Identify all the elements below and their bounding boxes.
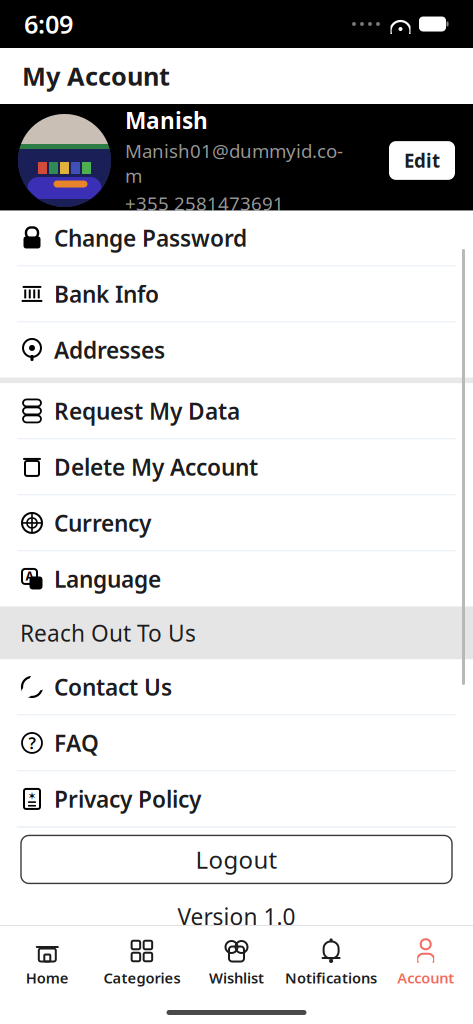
- staticText: Manish: [125, 105, 208, 135]
- staticText: ?: [28, 732, 35, 753]
- staticText: Currency: [54, 508, 151, 538]
- button[interactable]: Logout: [21, 835, 452, 883]
- staticText: Notifications: [285, 968, 377, 987]
- staticText: A: [25, 568, 33, 584]
- staticText: Categories: [103, 968, 180, 987]
- staticText: Logout: [195, 843, 277, 875]
- staticText: Delete My Account: [54, 452, 258, 482]
- staticText: Contact Us: [54, 672, 172, 702]
- button[interactable]: Edit: [389, 141, 455, 180]
- staticText: Bank Info: [54, 279, 159, 309]
- staticText: 6:09: [24, 7, 73, 41]
- button[interactable]: Contact Us: [0, 659, 473, 714]
- staticText: Change Password: [54, 223, 247, 253]
- staticText: Wishlist: [209, 968, 264, 987]
- button[interactable]: Request My Data: [0, 383, 473, 438]
- staticText: +355 2581473691: [125, 191, 284, 216]
- button[interactable]: Notifications: [284, 935, 378, 991]
- staticText: Version 1.0: [177, 901, 295, 931]
- button[interactable]: Account: [378, 935, 473, 991]
- button[interactable]: Change Password: [0, 210, 473, 265]
- button[interactable]: Bank Info: [0, 266, 473, 321]
- staticText: Manish01@dummyid.com: [125, 138, 343, 188]
- button[interactable]: Currency: [0, 495, 473, 550]
- button[interactable]: A: [0, 551, 473, 606]
- button[interactable]: Categories: [95, 935, 189, 991]
- staticText: Language: [54, 564, 161, 594]
- staticText: My Account: [22, 59, 170, 93]
- button[interactable]: Addresses: [0, 322, 473, 377]
- button[interactable]: Delete My Account: [0, 439, 473, 494]
- staticText: Request My Data: [54, 396, 240, 426]
- staticText: Home: [26, 968, 69, 987]
- button[interactable]: Home: [0, 935, 95, 991]
- staticText: Account: [397, 968, 454, 987]
- staticText: Edit: [404, 148, 440, 173]
- staticText: Addresses: [54, 335, 165, 365]
- button[interactable]: ?: [0, 715, 473, 770]
- staticText: Privacy Policy: [54, 784, 201, 814]
- button[interactable]: ✶: [0, 771, 473, 826]
- staticText: ✶: [27, 790, 36, 802]
- button[interactable]: Wishlist: [189, 935, 284, 991]
- staticText: Reach Out To Us: [20, 618, 196, 648]
- staticText: FAQ: [54, 728, 99, 758]
